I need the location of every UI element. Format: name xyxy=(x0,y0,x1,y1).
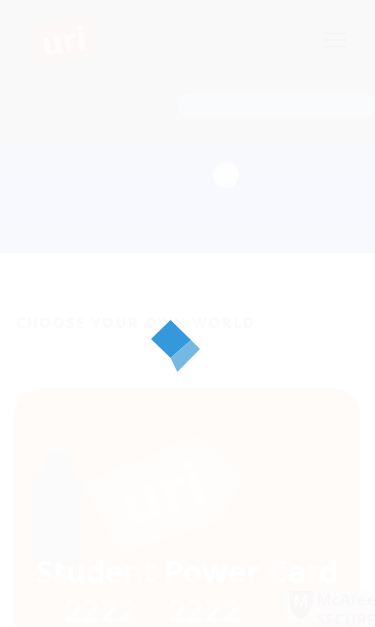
staticText: CHOOSE YOUR OWN WORLD xyxy=(16,312,254,332)
